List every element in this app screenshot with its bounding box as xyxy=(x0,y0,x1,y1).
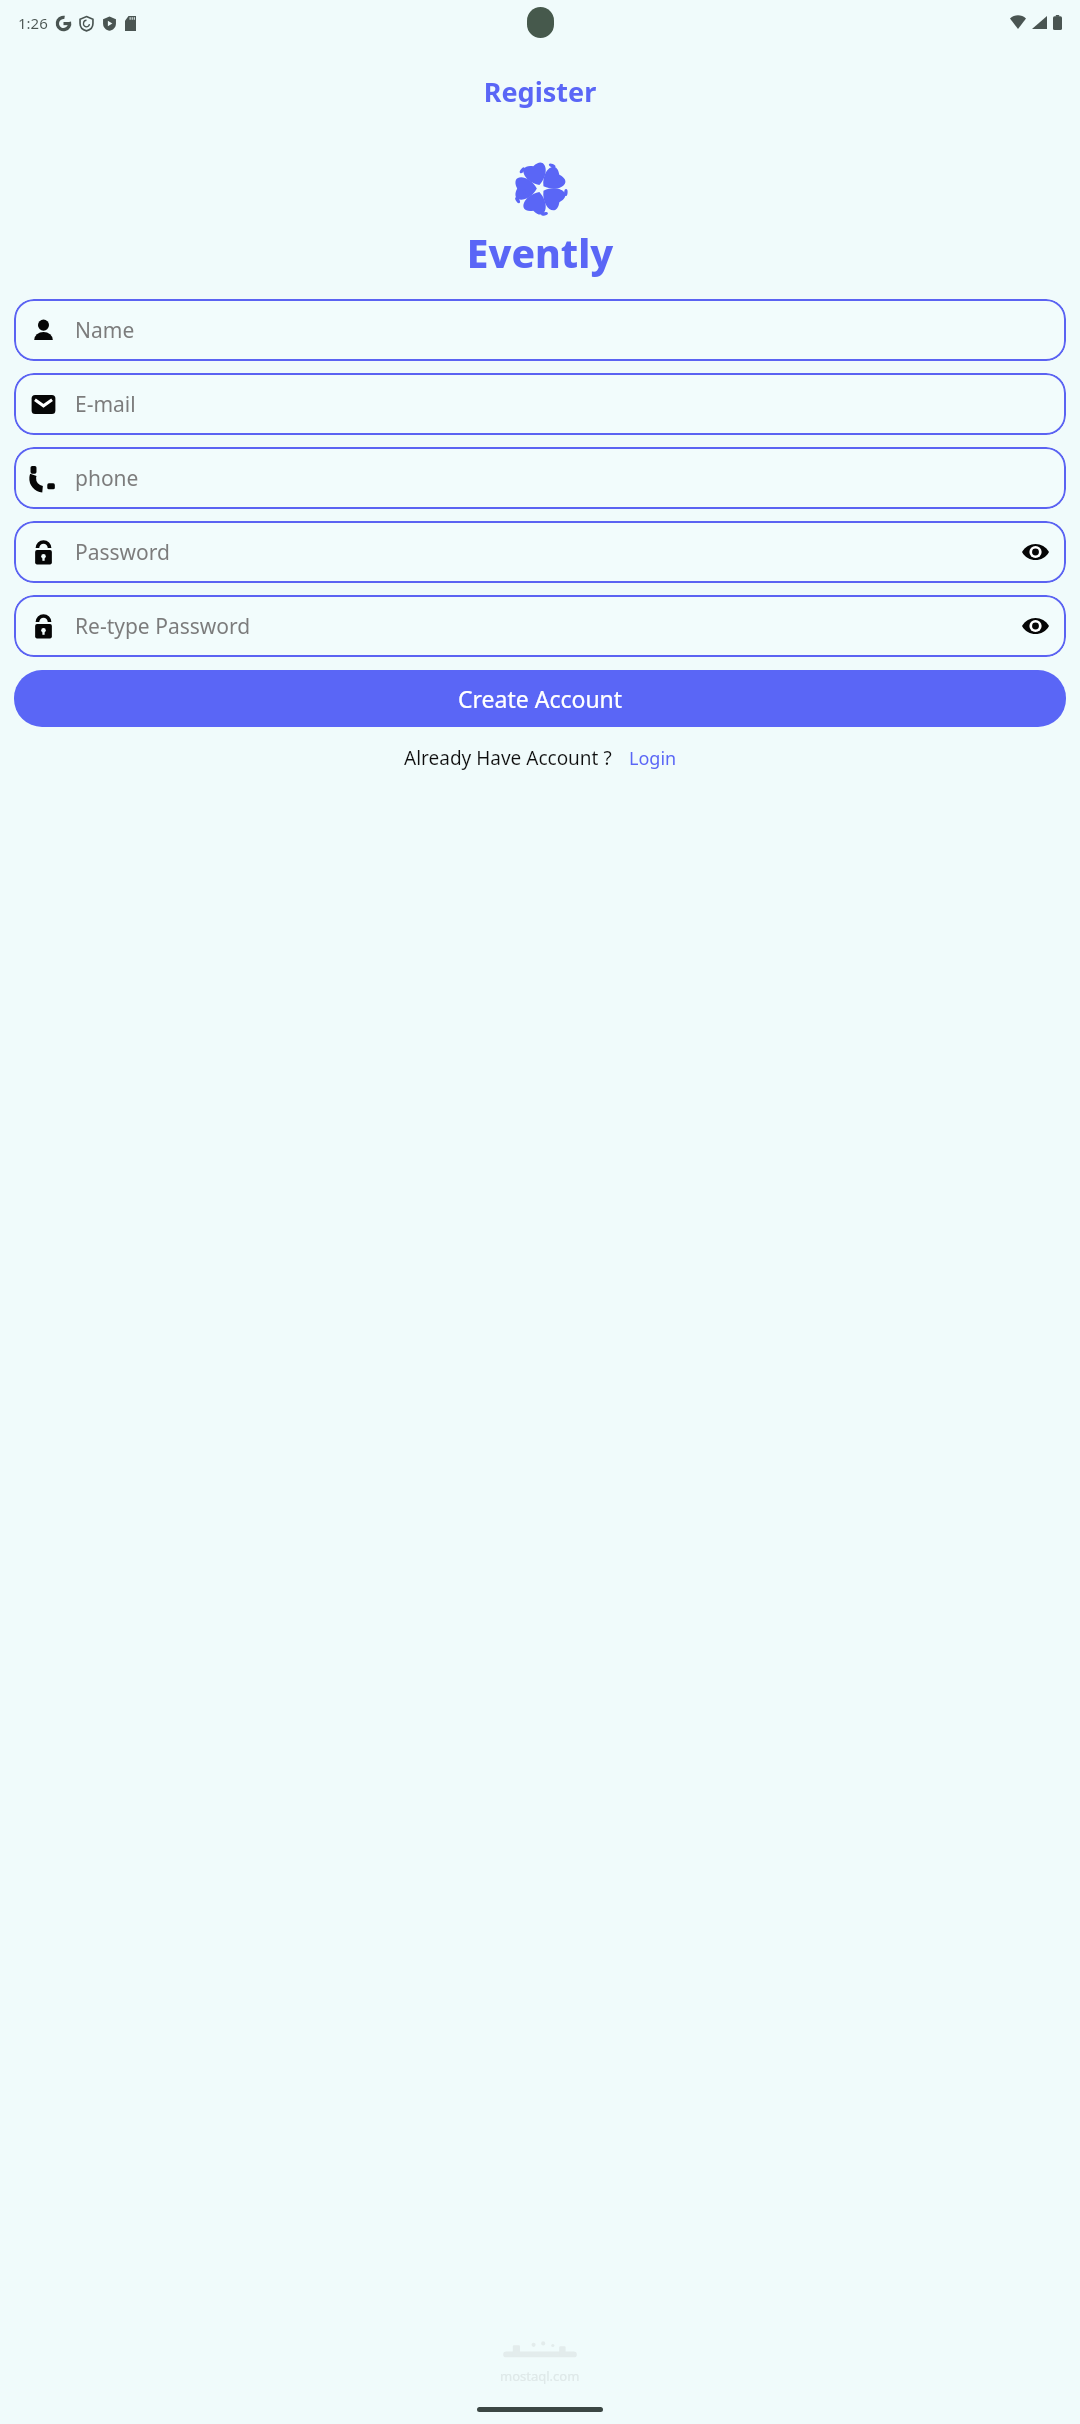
staticText: Re-type Password xyxy=(75,612,1012,641)
staticText: 1:26 xyxy=(18,13,48,33)
button[interactable]: phone xyxy=(14,447,1066,509)
staticText: phone xyxy=(75,464,1066,493)
staticText: Evently xyxy=(0,226,1080,279)
button[interactable]: Show password xyxy=(1012,529,1058,575)
staticText: Register xyxy=(0,73,1080,110)
staticText: Already Have Account ? xyxy=(404,745,612,771)
staticText: Password xyxy=(75,538,1012,567)
button[interactable]: Show password xyxy=(1012,603,1058,649)
button[interactable]: Re-type Password xyxy=(14,595,1066,657)
staticText: Login xyxy=(629,746,677,771)
button[interactable]: Login xyxy=(629,746,677,771)
staticText: E-mail xyxy=(75,390,1066,419)
button[interactable]: Create Account xyxy=(14,670,1066,727)
staticText: Create Account xyxy=(458,683,623,714)
button[interactable]: Name xyxy=(14,299,1066,361)
button[interactable]: E-mail xyxy=(14,373,1066,435)
button[interactable]: Password xyxy=(14,521,1066,583)
staticText: mostaql.com xyxy=(500,2367,580,2385)
staticText: Name xyxy=(75,316,1066,345)
